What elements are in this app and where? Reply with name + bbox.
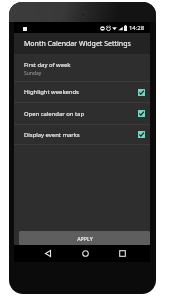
staticText: APPLY (77, 235, 93, 242)
button[interactable]: First day of week (14, 54, 150, 81)
staticText: Display event marks (24, 131, 138, 139)
button[interactable]: Home (77, 245, 94, 262)
button[interactable]: Open calendar on tap (14, 103, 150, 124)
staticText: Month Calendar Widget Settings (24, 39, 131, 49)
button[interactable]: Back (39, 245, 56, 262)
staticText: 14:28 (129, 24, 145, 32)
button[interactable]: Display event marks (14, 125, 150, 144)
button[interactable]: Highlight weekends (14, 82, 150, 102)
button[interactable]: APPLY (19, 231, 150, 245)
staticText: Sunday (24, 70, 42, 77)
staticText: Open calendar on tap (24, 110, 138, 118)
staticText: First day of week (24, 61, 71, 69)
staticText: Highlight weekends (24, 88, 138, 96)
button[interactable]: Recent apps (114, 245, 131, 262)
